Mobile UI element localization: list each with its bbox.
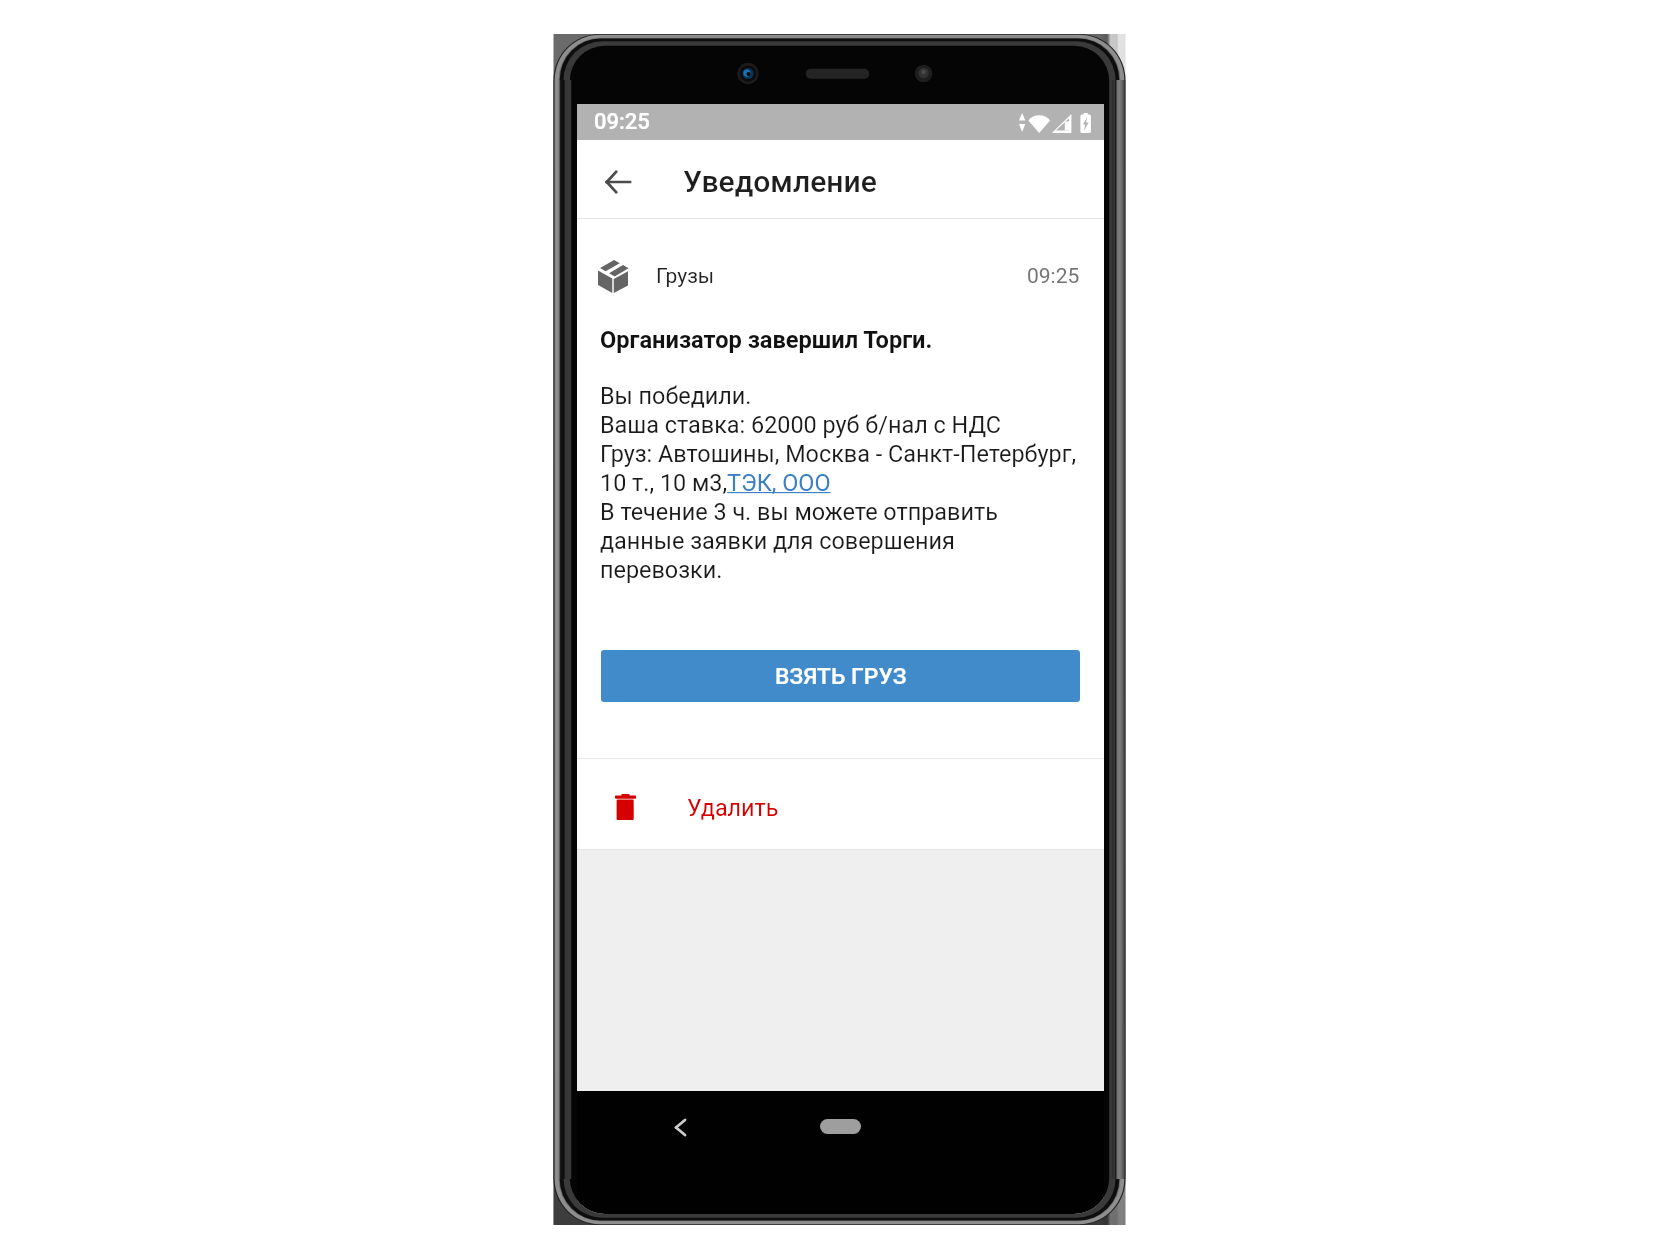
button[interactable]: Back	[657, 1104, 703, 1150]
staticText: Вы победили. Ваша ставка: 62000 руб б/на…	[600, 382, 1077, 584]
staticText: Уведомление	[683, 164, 877, 199]
staticText: 09:25	[1027, 264, 1080, 289]
button[interactable]: ВЗЯТЬ ГРУЗ	[601, 650, 1080, 702]
button[interactable]: Home	[820, 1119, 861, 1134]
staticText: Удалить	[687, 794, 779, 821]
staticText: Грузы	[656, 264, 715, 289]
button[interactable]: Back	[590, 154, 646, 210]
staticText: 09:25	[594, 109, 650, 135]
staticText: Организатор завершил Торги.	[600, 326, 933, 354]
staticText: ВЗЯТЬ ГРУЗ	[775, 663, 907, 690]
button[interactable]: Удалить	[577, 759, 1104, 849]
